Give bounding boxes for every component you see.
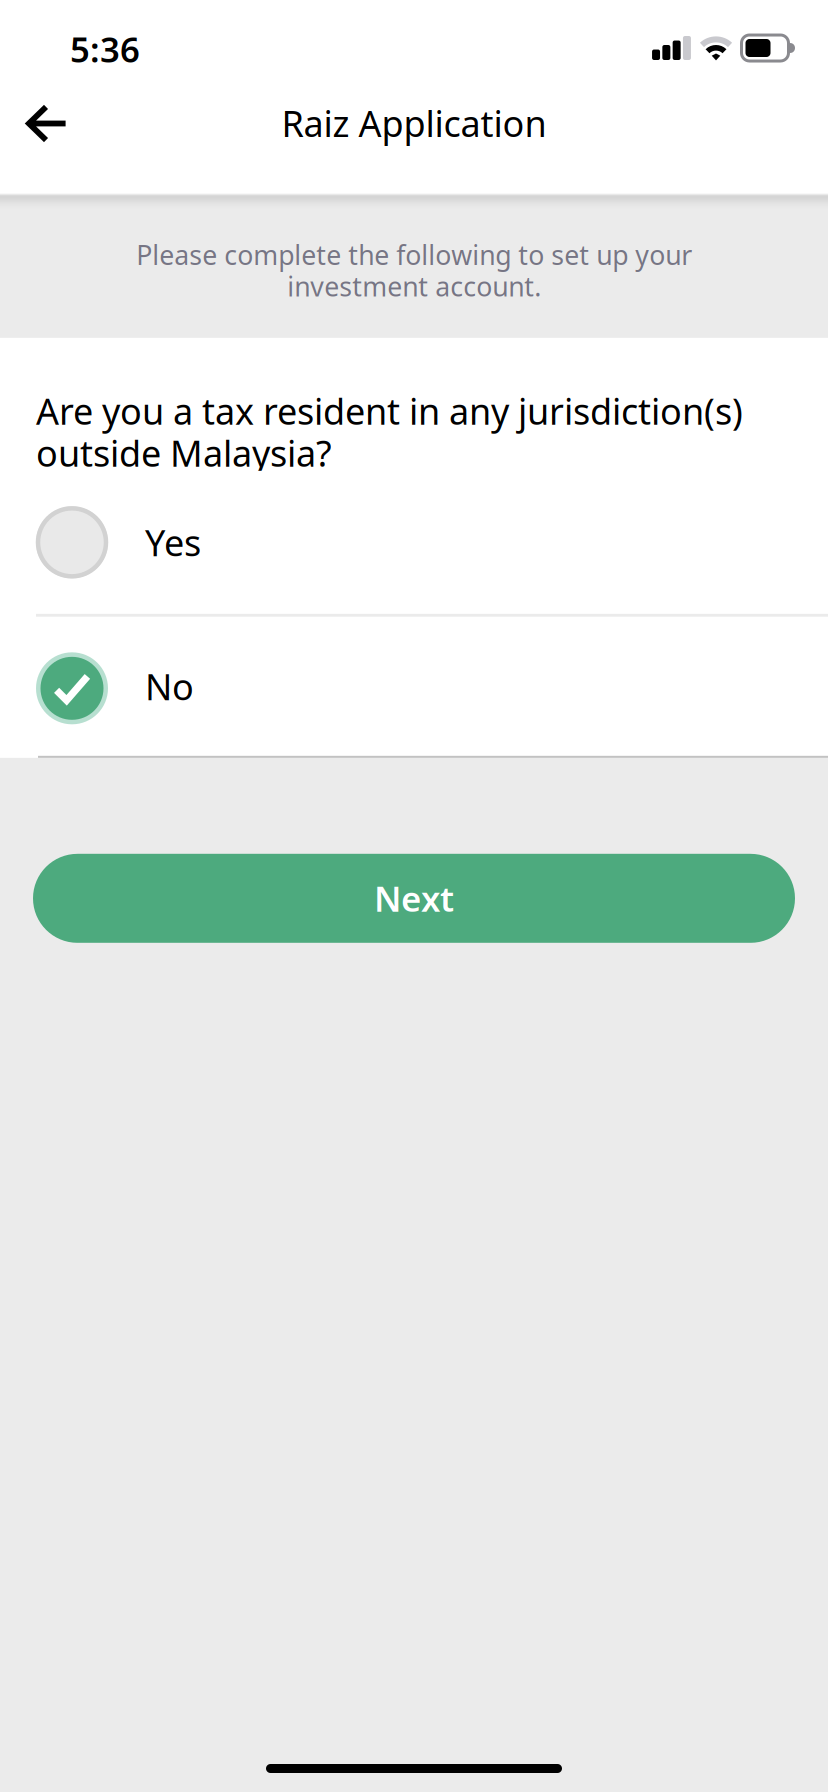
staticText: Yes <box>145 518 201 566</box>
staticText: Please complete the following to set up … <box>136 237 692 304</box>
button[interactable]: Next <box>33 854 795 943</box>
staticText: Raiz Application <box>281 99 546 147</box>
button[interactable]: Yes <box>0 471 828 614</box>
button[interactable]: No <box>0 617 828 756</box>
staticText: Are you a tax resident in any jurisdicti… <box>36 387 743 435</box>
staticText: 5:36 <box>70 26 140 72</box>
button[interactable]: Back <box>0 80 94 167</box>
staticText: Next <box>374 875 454 921</box>
staticText: No <box>145 662 194 710</box>
staticText: outside Malaysia? <box>36 429 332 477</box>
